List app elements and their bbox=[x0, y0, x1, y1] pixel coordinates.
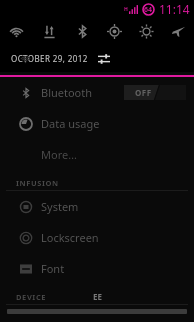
button[interactable]: Bluetooth bbox=[0, 77, 194, 108]
staticText: EE bbox=[93, 291, 102, 302]
button[interactable]: Location bbox=[98, 18, 130, 45]
staticText: 64 bbox=[144, 5, 153, 15]
staticText: System bbox=[41, 199, 79, 214]
button[interactable]: Lockscreen bbox=[0, 222, 194, 253]
staticText: OCTOBER 29, 2012 bbox=[11, 53, 88, 64]
staticText: Lockscreen bbox=[41, 230, 99, 245]
button[interactable]: System bbox=[0, 191, 194, 222]
staticText: Bluetooth bbox=[41, 85, 93, 100]
staticText: H bbox=[124, 6, 128, 13]
button[interactable]: Settings bbox=[96, 51, 112, 67]
staticText: Wi-Fi bbox=[40, 60, 66, 63]
button[interactable]: Data usage bbox=[0, 108, 194, 139]
button[interactable]: Airplane mode bbox=[162, 18, 194, 45]
button[interactable]: Bluetooth toggle, off bbox=[124, 85, 186, 100]
button[interactable]: More… bbox=[0, 139, 194, 170]
staticText: 11:14 bbox=[159, 1, 190, 17]
button[interactable]: Brightness bbox=[130, 18, 162, 45]
button[interactable]: Font bbox=[0, 253, 194, 284]
staticText: OFF bbox=[135, 87, 152, 98]
staticText: Data usage bbox=[41, 116, 100, 131]
staticText: More… bbox=[41, 147, 77, 162]
button[interactable]: Wi-Fi bbox=[0, 18, 33, 45]
staticText: Font bbox=[41, 261, 65, 276]
staticText: DEVICE bbox=[16, 292, 47, 302]
button[interactable]: Mobile data bbox=[33, 18, 66, 45]
staticText: INFUSION bbox=[16, 178, 59, 188]
button[interactable]: Bluetooth bbox=[66, 18, 98, 45]
